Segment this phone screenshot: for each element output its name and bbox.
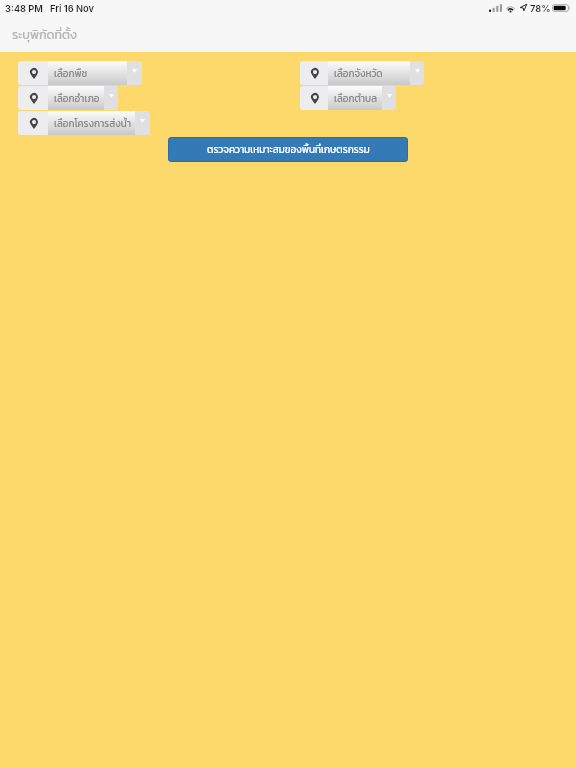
staticText: 3:48 PM (5, 3, 43, 14)
button[interactable]: ตรวจความเหมาะสมของพื้นที่เกษตรกรรม (169, 138, 407, 161)
button[interactable]: เลือกโครงการส่งน้ำ (18, 111, 150, 135)
staticText: ระบุพิกัดที่ตั้ง (12, 25, 78, 44)
staticText: Fri 16 Nov (50, 3, 95, 14)
staticText: เลือกพืช (54, 66, 88, 81)
button[interactable]: เลือกอำเภอ (18, 86, 118, 110)
staticText: 78% (530, 3, 551, 14)
staticText: เลือกอำเภอ (54, 91, 100, 106)
button[interactable]: เลือกพืช (18, 61, 142, 85)
button[interactable]: เลือกจังหวัด (300, 61, 424, 85)
staticText: ตรวจความเหมาะสมของพื้นที่เกษตรกรรม (207, 142, 370, 157)
button[interactable]: เลือกตำบล (300, 86, 396, 110)
staticText: เลือกโครงการส่งน้ำ (54, 116, 132, 131)
staticText: เลือกตำบล (334, 91, 378, 106)
staticText: เลือกจังหวัด (334, 66, 383, 81)
